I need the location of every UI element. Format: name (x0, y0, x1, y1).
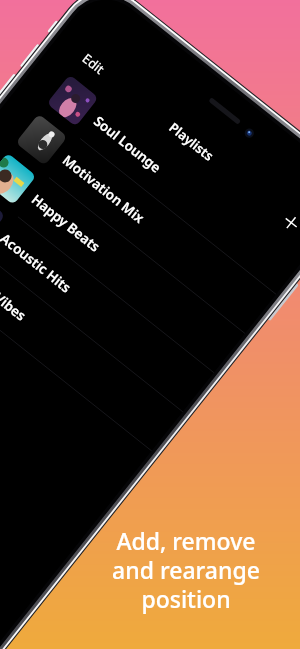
staticText: Add, remove and rearange position (112, 525, 260, 615)
